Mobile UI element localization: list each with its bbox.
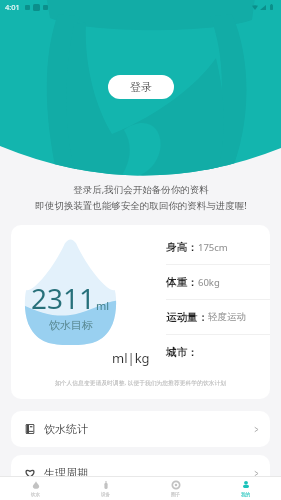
staticText: 体重： — [166, 276, 198, 289]
staticText: 60kg — [198, 276, 220, 289]
staticText: 饮水 — [31, 492, 41, 498]
button[interactable]: 饮水统计 — [11, 411, 270, 447]
staticText: 如个人信息变更请及时调整, 以便于我们为您推荐更科学的饮水计划 — [11, 379, 270, 387]
staticText: 圈子 — [171, 492, 181, 498]
staticText: 175cm — [198, 241, 228, 254]
button[interactable]: 生理周期 — [11, 455, 270, 491]
staticText: ml|kg — [112, 349, 150, 367]
staticText: 身高： — [166, 241, 198, 254]
staticText: 我的 — [241, 492, 251, 498]
staticText: 城市： — [166, 346, 198, 359]
staticText: 生理周期 — [44, 466, 88, 480]
button[interactable]: 圈子 — [141, 477, 211, 500]
button[interactable]: 设备 — [71, 477, 141, 500]
button[interactable]: 登录 — [108, 75, 174, 99]
button[interactable]: ml|kg — [108, 345, 154, 371]
staticText: 即使切换装置也能够安全的取回你的资料与进度喔! — [35, 199, 247, 212]
staticText: ml — [96, 298, 110, 313]
staticText: 轻度运动 — [208, 311, 246, 323]
staticText: 4:01 — [5, 2, 20, 12]
staticText: 登录 — [130, 80, 152, 94]
staticText: 设备 — [101, 492, 111, 498]
button[interactable]: 我的 — [211, 477, 281, 500]
staticText: 饮水统计 — [44, 422, 88, 436]
staticText: 登录后,我们会开始备份你的资料 — [73, 183, 209, 196]
staticText: 饮水目标 — [49, 318, 93, 332]
staticText: 2311 — [31, 279, 96, 317]
staticText: 运动量： — [166, 311, 208, 324]
button[interactable]: 饮水 — [0, 477, 71, 500]
